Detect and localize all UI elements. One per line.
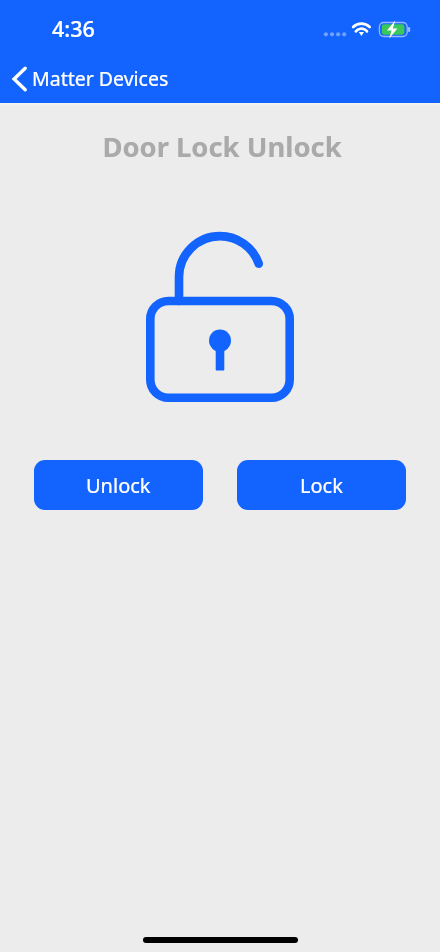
button[interactable]: Unlock (34, 460, 203, 510)
staticText: 4:36 (52, 14, 95, 43)
button[interactable]: Back to Matter Devices (8, 62, 179, 95)
staticText: Unlock (86, 472, 151, 499)
button[interactable]: Lock (237, 460, 406, 510)
staticText: Door Lock Unlock (2, 128, 440, 165)
staticText: Lock (300, 472, 343, 499)
staticText: Matter Devices (32, 65, 169, 92)
